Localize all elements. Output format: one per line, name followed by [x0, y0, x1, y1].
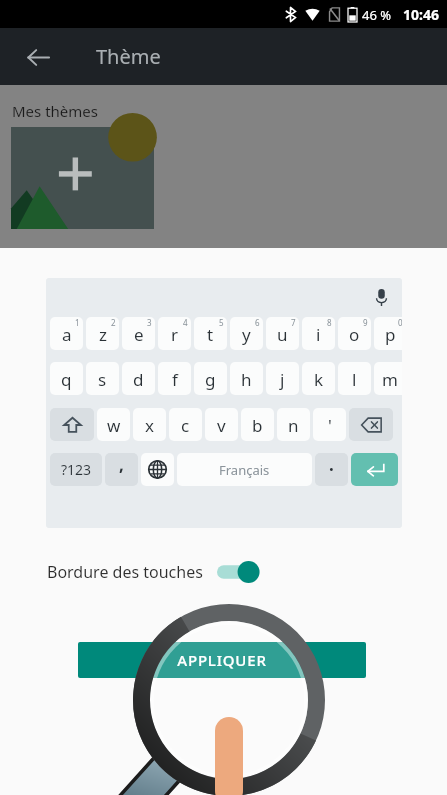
staticText: w	[107, 414, 121, 437]
staticText: l	[352, 368, 357, 391]
button[interactable]: Back	[14, 33, 62, 81]
button[interactable]: b	[241, 408, 274, 441]
button[interactable]: k	[302, 362, 335, 395]
staticText: v	[217, 414, 226, 437]
button[interactable]: Change language	[141, 453, 174, 486]
button[interactable]: i	[302, 317, 335, 350]
staticText: ?123	[61, 460, 92, 479]
button[interactable]: m	[374, 362, 402, 395]
staticText: .	[329, 453, 334, 476]
staticText: r	[171, 323, 179, 346]
button[interactable]: Key	[349, 408, 393, 441]
button[interactable]: Key	[50, 408, 94, 441]
staticText: s	[98, 368, 107, 391]
button[interactable]: Français	[177, 453, 312, 486]
button[interactable]: q	[50, 362, 83, 395]
staticText: d	[133, 368, 144, 391]
button[interactable]: Enter	[351, 453, 398, 486]
staticText: 1	[75, 317, 80, 328]
button[interactable]: v	[205, 408, 238, 441]
staticText: 9	[363, 317, 368, 328]
staticText: q	[61, 368, 72, 391]
staticText: k	[314, 368, 324, 391]
button[interactable]: w	[97, 408, 130, 441]
button[interactable]: t	[194, 317, 227, 350]
staticText: m	[382, 368, 398, 391]
staticText: 7	[291, 317, 296, 328]
button[interactable]: Add theme	[11, 127, 154, 229]
staticText: 46 %	[362, 6, 392, 24]
staticText: 8	[327, 317, 332, 328]
staticText: a	[62, 323, 72, 346]
staticText: o	[349, 323, 360, 346]
staticText: h	[241, 368, 252, 391]
staticText: 5	[219, 317, 224, 328]
button[interactable]: h	[230, 362, 263, 395]
staticText: APPLIQUER	[177, 650, 267, 670]
button[interactable]: c	[169, 408, 202, 441]
button[interactable]: p	[374, 317, 402, 350]
staticText: ,	[119, 453, 124, 476]
staticText: b	[252, 414, 263, 437]
staticText: n	[288, 414, 299, 437]
button[interactable]: d	[122, 362, 155, 395]
staticText: y	[242, 323, 251, 346]
staticText: t	[207, 323, 214, 346]
button[interactable]: n	[277, 408, 310, 441]
button[interactable]: g	[194, 362, 227, 395]
button[interactable]: f	[158, 362, 191, 395]
button[interactable]: s	[86, 362, 119, 395]
button[interactable]: a	[50, 317, 83, 350]
button[interactable]: .	[315, 453, 348, 486]
staticText: 2	[111, 317, 116, 328]
button[interactable]: l	[338, 362, 371, 395]
staticText: 10:46	[403, 5, 439, 24]
staticText: 4	[183, 317, 188, 328]
staticText: f	[172, 368, 178, 391]
button[interactable]: '	[313, 408, 346, 441]
staticText: 6	[255, 317, 260, 328]
button[interactable]: z	[86, 317, 119, 350]
staticText: Mes thèmes	[12, 101, 98, 121]
button[interactable]: APPLIQUER	[78, 642, 366, 678]
button[interactable]: e	[122, 317, 155, 350]
staticText: Thème	[96, 43, 161, 70]
staticText: p	[385, 323, 396, 346]
button[interactable]: Voice input	[368, 284, 394, 310]
staticText: x	[145, 414, 154, 437]
button[interactable]: y	[230, 317, 263, 350]
staticText: j	[280, 368, 285, 391]
button[interactable]: Bordure des touches	[0, 555, 447, 589]
staticText: 0	[398, 317, 402, 328]
button[interactable]: x	[133, 408, 166, 441]
staticText: g	[205, 368, 216, 391]
staticText: Bordure des touches	[47, 561, 203, 583]
button[interactable]: u	[266, 317, 299, 350]
staticText: '	[328, 414, 332, 437]
button[interactable]: ?123	[50, 453, 102, 486]
button[interactable]: ,	[105, 453, 138, 486]
staticText: e	[134, 323, 144, 346]
staticText: i	[316, 323, 321, 346]
staticText: 3	[147, 317, 152, 328]
staticText: Français	[219, 461, 270, 479]
button[interactable]: o	[338, 317, 371, 350]
button[interactable]: j	[266, 362, 299, 395]
staticText: c	[181, 414, 190, 437]
staticText: u	[277, 323, 288, 346]
button[interactable]: r	[158, 317, 191, 350]
staticText: z	[99, 323, 107, 346]
